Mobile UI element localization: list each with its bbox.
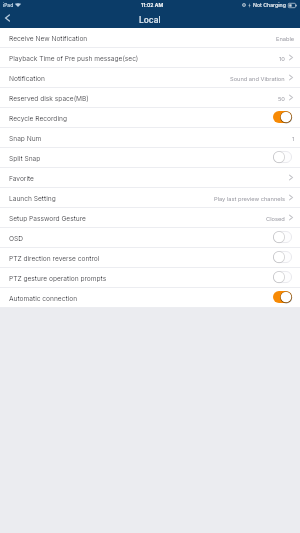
- button[interactable]: Snap Num: [0, 128, 300, 148]
- staticText: iPad: [3, 2, 14, 8]
- button[interactable]: PTZ direction reverse control: [0, 248, 300, 268]
- button[interactable]: Setup Password Gesture: [0, 208, 300, 228]
- button[interactable]: Off: [273, 151, 292, 163]
- staticText: 11:02 AM: [141, 2, 164, 8]
- staticText: Snap Num: [9, 135, 42, 143]
- staticText: OSD: [9, 235, 24, 243]
- staticText: Recycle Recording: [9, 115, 67, 123]
- button[interactable]: Reserved disk space(MB): [0, 88, 300, 108]
- staticText: Not Charging: [253, 2, 286, 8]
- staticText: Split Snap: [9, 155, 41, 163]
- button[interactable]: OSD: [0, 228, 300, 248]
- button[interactable]: Off: [273, 271, 292, 283]
- staticText: Closed: [266, 215, 285, 222]
- staticText: PTZ direction reverse control: [9, 255, 100, 263]
- staticText: 50: [278, 95, 285, 102]
- button[interactable]: Notification: [0, 68, 300, 88]
- button[interactable]: Recycle Recording: [0, 108, 300, 128]
- button[interactable]: On: [273, 111, 292, 123]
- staticText: Local: [139, 15, 161, 25]
- button[interactable]: Launch Setting: [0, 188, 300, 208]
- button[interactable]: Favorite: [0, 168, 300, 188]
- staticText: Launch Setting: [9, 195, 56, 203]
- button[interactable]: PTZ gesture operation prompts: [0, 268, 300, 288]
- staticText: PTZ gesture operation prompts: [9, 275, 107, 283]
- staticText: Playback Time of Pre push message(sec): [9, 55, 139, 63]
- staticText: Reserved disk space(MB): [9, 95, 89, 103]
- staticText: Sound and Vibration: [230, 75, 285, 82]
- button[interactable]: Split Snap: [0, 148, 300, 168]
- staticText: Setup Password Gesture: [9, 215, 86, 223]
- button[interactable]: Back: [0, 10, 18, 28]
- staticText: Notification: [9, 75, 45, 83]
- staticText: Enable: [276, 35, 295, 42]
- staticText: 1: [292, 135, 295, 142]
- button[interactable]: Receive New Notification: [0, 28, 300, 48]
- staticText: 10: [279, 55, 285, 62]
- staticText: Automatic connection: [9, 295, 78, 303]
- staticText: Play last preview channels: [214, 195, 285, 202]
- staticText: Receive New Notification: [9, 35, 88, 43]
- button[interactable]: Off: [273, 231, 292, 243]
- button[interactable]: Playback Time of Pre push message(sec): [0, 48, 300, 68]
- staticText: Favorite: [9, 175, 34, 183]
- button[interactable]: On: [273, 291, 292, 303]
- button[interactable]: Automatic connection: [0, 288, 300, 308]
- button[interactable]: Off: [273, 251, 292, 263]
